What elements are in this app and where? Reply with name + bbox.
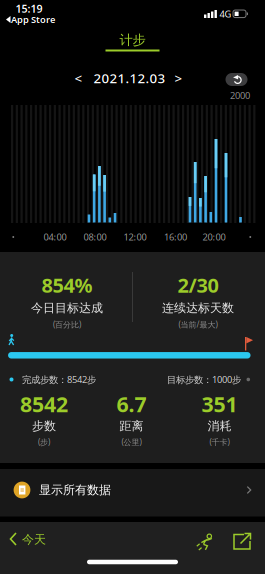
staticText: (百分比) xyxy=(53,319,81,330)
staticText: 今日目标达成 xyxy=(31,301,103,315)
staticText: > xyxy=(174,69,182,87)
staticText: 20:00 xyxy=(202,231,225,243)
button[interactable]: Reset xyxy=(225,73,247,86)
staticText: 04:00 xyxy=(43,231,66,243)
staticText: 6.7 xyxy=(116,390,146,418)
staticText: 2000 xyxy=(230,89,250,102)
staticText: 854% xyxy=(41,272,92,298)
staticText: 2021.12.03 xyxy=(93,69,165,87)
button[interactable]: Today xyxy=(4,527,56,551)
staticText: 2/30 xyxy=(177,272,218,298)
button[interactable]: Next day xyxy=(171,71,185,85)
staticText: 351 xyxy=(201,390,237,418)
staticText: 4G xyxy=(219,8,231,20)
staticText: 15:19 xyxy=(15,1,42,16)
staticText: 16:00 xyxy=(164,231,187,243)
staticText: 显示所有数据 xyxy=(39,483,111,497)
staticText: 计步 xyxy=(119,32,145,48)
button[interactable]: Activity xyxy=(195,529,217,551)
staticText: 消耗 xyxy=(207,419,231,433)
staticText: 目标步数：1000步 xyxy=(167,373,241,386)
staticText: 距离 xyxy=(119,419,143,433)
button[interactable]: Share xyxy=(231,530,253,552)
staticText: 步数 xyxy=(32,419,56,433)
staticText: < xyxy=(74,69,82,87)
button[interactable]: Previous day xyxy=(71,71,85,85)
staticText: (步) xyxy=(38,437,50,447)
staticText: 完成步数：8542步 xyxy=(22,373,96,386)
button[interactable]: 显示所有数据 xyxy=(0,469,265,516)
staticText: (千卡) xyxy=(209,437,229,447)
staticText: 8542 xyxy=(20,390,68,418)
staticText: (当前/最大) xyxy=(178,319,217,330)
staticText: 连续达标天数 xyxy=(162,301,234,315)
staticText: 12:00 xyxy=(123,231,146,243)
staticText: App Store xyxy=(11,13,55,26)
staticText: (公里) xyxy=(121,437,141,447)
staticText: 今天 xyxy=(22,532,46,547)
staticText: 08:00 xyxy=(83,231,106,243)
